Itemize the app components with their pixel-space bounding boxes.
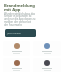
staticText: Brandmeldung mit App (4, 3, 36, 13)
other: Avatar (44, 60, 50, 66)
button[interactable]: Avatar (3, 58, 30, 72)
button[interactable]: Jetzt melden (5, 29, 36, 37)
other: Avatar (14, 60, 20, 66)
other: Avatar (44, 43, 50, 49)
button[interactable]: Avatar (3, 41, 30, 56)
staticText: Jetzt melden (7, 31, 21, 34)
button[interactable]: Avatar (33, 41, 61, 56)
staticText: Wunder wirklich dass das Sensor in sekun… (4, 12, 36, 27)
other: Avatar (14, 43, 20, 49)
button[interactable]: Avatar (33, 58, 61, 72)
